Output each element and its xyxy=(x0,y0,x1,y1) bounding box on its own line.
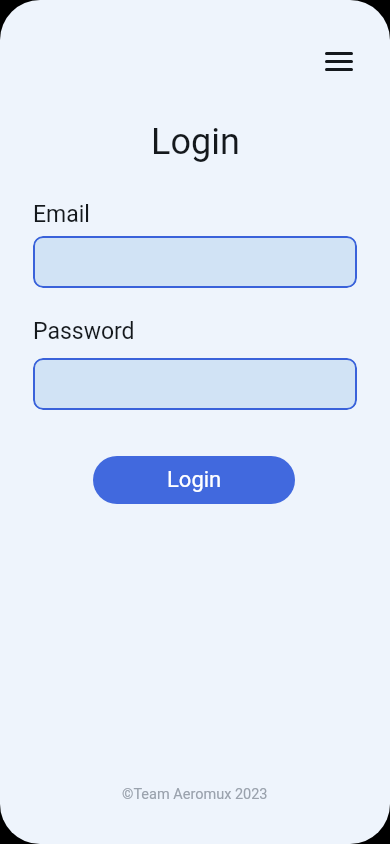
button[interactable] xyxy=(33,236,357,288)
button[interactable] xyxy=(325,52,353,71)
staticText: ©Team Aeromux 2023 xyxy=(122,786,268,803)
staticText: Login xyxy=(167,467,222,493)
button[interactable]: Login xyxy=(93,456,295,504)
button[interactable] xyxy=(33,358,357,410)
staticText: Email xyxy=(33,201,90,228)
staticText: Login xyxy=(151,121,240,163)
staticText: Password xyxy=(33,318,135,345)
